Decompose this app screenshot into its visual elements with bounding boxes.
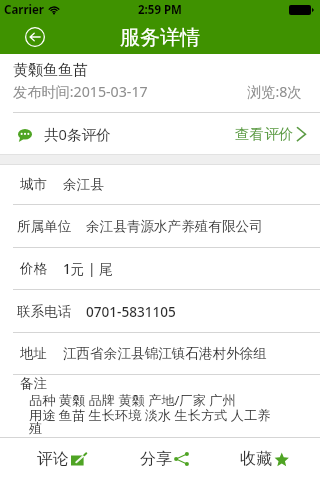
staticText: 黄颡鱼鱼苗: [13, 61, 88, 80]
staticText: 城市: [20, 176, 48, 193]
staticText: 品种 黄颡 品牌 黄颡 产地/厂家 广州 用途 鱼苗 生长环境 淡水 生长方式 …: [29, 391, 271, 437]
staticText: 分享: [140, 449, 172, 469]
button[interactable]: 共0条评价: [0, 113, 320, 154]
staticText: 收藏: [240, 449, 272, 469]
staticText: 服务详情: [120, 25, 200, 50]
button[interactable]: 评论: [0, 438, 106, 480]
staticText: 查看评价: [235, 125, 294, 143]
button[interactable]: 地址: [0, 333, 320, 374]
staticText: 0701-5831105: [86, 302, 176, 321]
staticText: 浏览:8次: [247, 82, 302, 101]
staticText: 联系电话: [17, 303, 72, 320]
staticText: 共0条评价: [44, 124, 111, 144]
staticText: 价格: [20, 260, 48, 277]
staticText: 余江县: [63, 176, 104, 193]
button[interactable]: 分享: [106, 438, 213, 480]
staticText: Carrier: [4, 2, 44, 18]
staticText: 余江县青源水产养殖有限公司: [86, 218, 263, 235]
button[interactable]: Back: [20, 22, 50, 52]
staticText: 备注: [20, 375, 47, 392]
staticText: 1元 | 尾: [63, 259, 113, 278]
button[interactable]: 所属单位: [0, 205, 320, 247]
staticText: 2:59 PM: [138, 2, 182, 18]
staticText: 评论: [37, 449, 69, 469]
staticText: 所属单位: [17, 218, 72, 235]
button[interactable]: 联系电话: [0, 290, 320, 332]
button[interactable]: 城市: [0, 165, 320, 204]
staticText: 江西省余江县锦江镇石港村外徐组: [63, 345, 267, 362]
staticText: 发布时间:2015-03-17: [13, 82, 148, 101]
button[interactable]: 收藏: [213, 438, 320, 480]
staticText: 地址: [20, 345, 48, 362]
button[interactable]: 价格: [0, 248, 320, 289]
